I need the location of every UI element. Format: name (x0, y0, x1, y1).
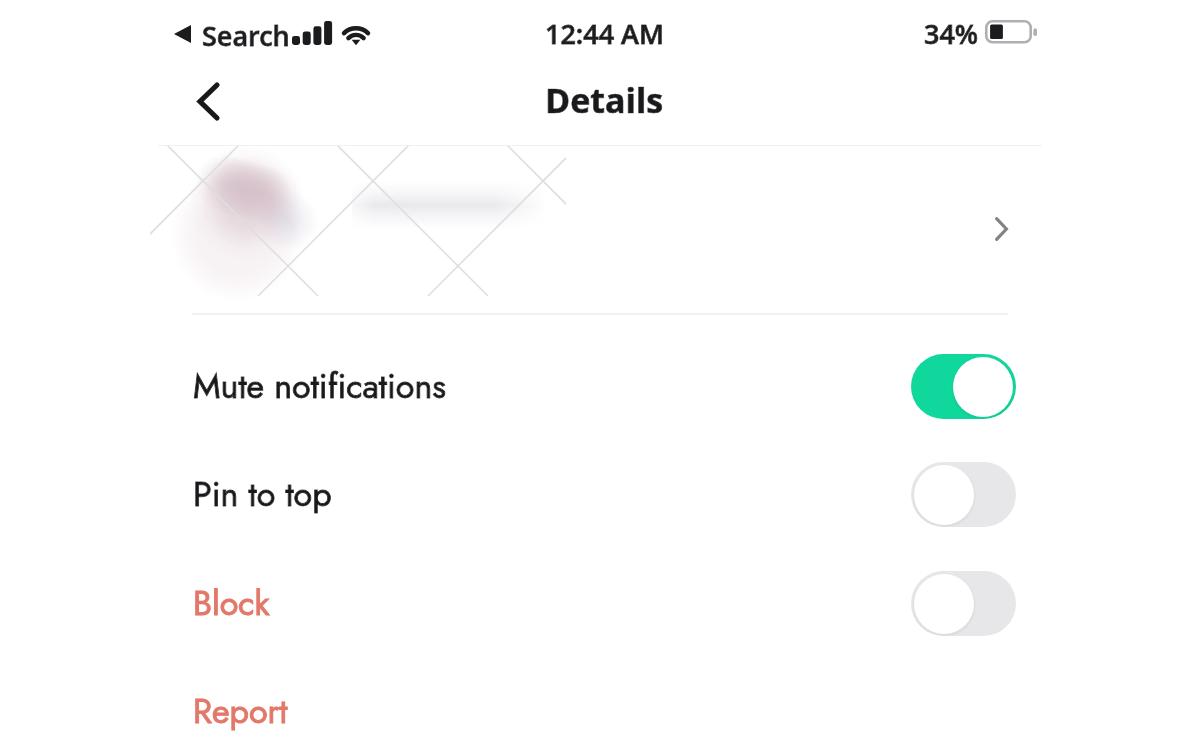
button[interactable]: Block (0, 549, 1200, 657)
staticText: Block (193, 579, 270, 628)
staticText: Pin to top (193, 470, 332, 519)
staticText: Mute notifications (193, 362, 446, 411)
staticText: Report (193, 687, 288, 736)
staticText: Pin to top (193, 470, 332, 519)
staticText: 34% (924, 15, 979, 52)
button[interactable]: Open contact profile (0, 146, 1200, 313)
button[interactable]: Back (170, 66, 246, 136)
button[interactable]: Mute notifications (0, 332, 1200, 440)
staticText: Details (545, 77, 664, 123)
button[interactable]: Report (0, 657, 1200, 750)
staticText: Search (202, 17, 290, 54)
staticText: Mute notifications (193, 362, 446, 411)
staticText: Details (545, 77, 664, 123)
staticText: Block (193, 579, 270, 628)
button[interactable]: Mute notifications on (911, 354, 1016, 419)
staticText: 34% (924, 15, 979, 52)
staticText: Report (193, 687, 288, 736)
button[interactable]: Block off (911, 571, 1016, 636)
button[interactable]: Pin to top (0, 440, 1200, 548)
button[interactable]: Pin to top off (911, 462, 1016, 527)
staticText: 12:44 AM (545, 15, 664, 52)
staticText: 12:44 AM (545, 15, 664, 52)
staticText: Search (202, 17, 290, 54)
